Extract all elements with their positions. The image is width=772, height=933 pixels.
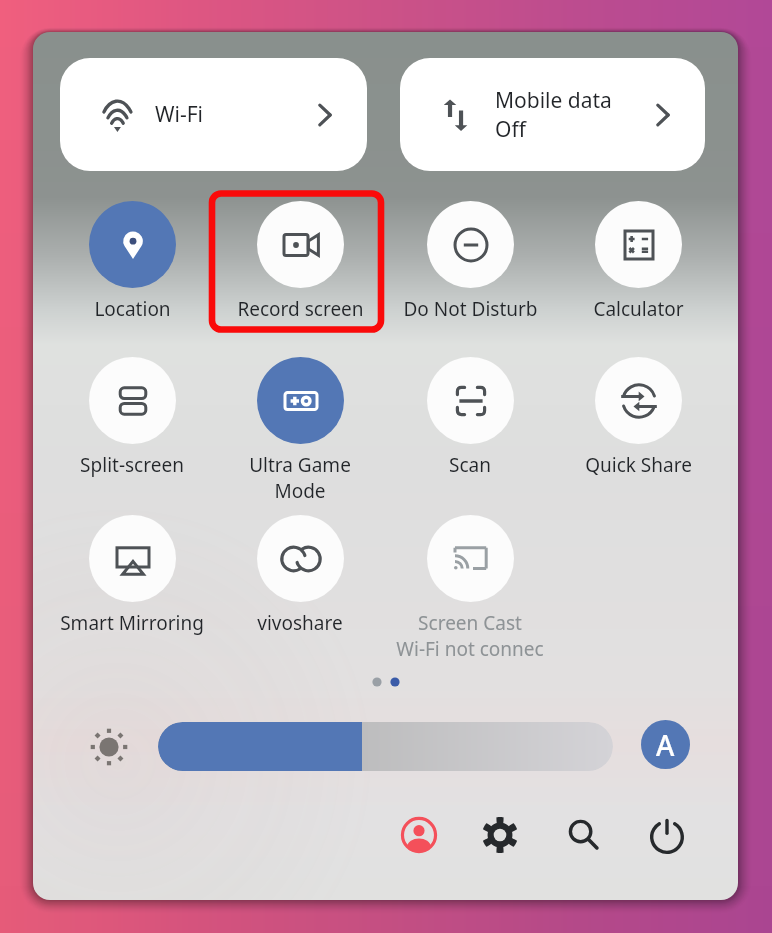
staticText: Smart Mirroring	[60, 610, 204, 636]
button[interactable]: Ultra Game Mode	[200, 357, 400, 503]
staticText: Ultra Game Mode	[249, 452, 351, 503]
button[interactable]: Split-screen	[33, 357, 232, 478]
button[interactable]: Settings	[476, 811, 524, 859]
button[interactable]: Record screen	[200, 201, 400, 322]
staticText: A	[656, 726, 675, 764]
button[interactable]: Brightness	[85, 723, 133, 771]
button[interactable]: Location	[33, 201, 232, 322]
staticText: Screen Cast Wi-Fi not connec	[396, 610, 544, 661]
staticText: Wi-Fi	[155, 100, 204, 129]
button[interactable]: Account	[395, 811, 443, 859]
staticText: Do Not Disturb	[403, 296, 538, 322]
button[interactable]: Smart Mirroring	[33, 515, 232, 636]
staticText: Scan	[449, 452, 491, 478]
button[interactable]: Search	[560, 811, 608, 859]
staticText: vivoshare	[257, 610, 343, 636]
button[interactable]: Wi-Fi	[60, 58, 367, 171]
staticText: Location	[94, 296, 171, 322]
button[interactable]: Mobile data	[400, 58, 705, 171]
staticText: Record screen	[237, 296, 364, 322]
staticText: Off	[495, 115, 526, 144]
button[interactable]: Power	[643, 811, 691, 859]
staticText: Quick Share	[585, 452, 692, 478]
staticText: Mobile data	[495, 86, 612, 115]
button[interactable]: Brightness slider	[158, 722, 613, 771]
button[interactable]: Scan	[370, 357, 570, 478]
button[interactable]: vivoshare	[200, 515, 400, 636]
staticText: Split-screen	[80, 452, 184, 478]
button[interactable]: Calculator	[538, 201, 738, 322]
button[interactable]: Auto brightness	[641, 720, 690, 769]
staticText: Calculator	[593, 296, 684, 322]
button[interactable]: Do Not Disturb	[370, 201, 570, 322]
button[interactable]: Quick Share	[538, 357, 738, 478]
button[interactable]: Screen Cast Wi-Fi not connec	[370, 515, 570, 661]
